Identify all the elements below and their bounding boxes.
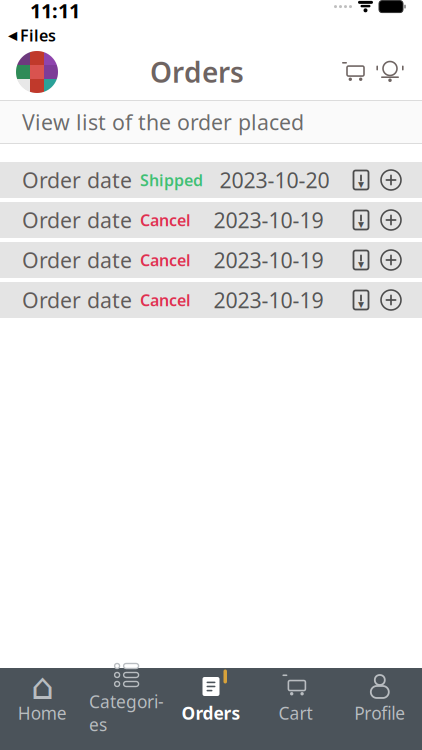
staticText: Order date <box>22 166 132 194</box>
button[interactable]: Categories <box>84 655 169 742</box>
staticText: 2023-10-19 <box>213 286 323 314</box>
staticText: Cancel <box>140 209 191 231</box>
button[interactable]: Order details <box>376 169 406 191</box>
staticText: 11:11 <box>30 0 80 24</box>
button[interactable]: Download invoice <box>346 289 376 311</box>
staticText: Categories <box>89 690 164 736</box>
staticText: Cart <box>278 701 312 724</box>
staticText: Profile <box>354 701 405 724</box>
button[interactable]: Order details <box>376 249 406 271</box>
staticText: ◀ <box>8 28 17 42</box>
staticText: ▾ <box>358 217 364 231</box>
staticText: 2023-10-19 <box>213 206 323 234</box>
button[interactable]: Profile photo <box>0 45 58 99</box>
staticText: 2023-10-20 <box>219 166 329 194</box>
staticText: Cancel <box>140 289 191 311</box>
button[interactable]: Download invoice <box>346 209 376 231</box>
staticText: Orders <box>150 53 244 91</box>
staticText: Files <box>20 25 56 46</box>
button[interactable]: Cart <box>336 53 372 91</box>
staticText: 2023-10-19 <box>213 246 323 274</box>
staticText: Shipped <box>140 169 203 191</box>
button[interactable]: Order details <box>376 289 406 311</box>
staticText: ▾ <box>358 297 364 311</box>
button[interactable]: ⌂ <box>0 666 84 730</box>
staticText: ▾ <box>358 177 364 191</box>
button[interactable]: Profile <box>338 666 422 730</box>
staticText: ⌂ <box>31 666 54 707</box>
button[interactable]: Cart <box>253 666 338 730</box>
button[interactable]: Order details <box>376 209 406 231</box>
staticText: View list of the order placed <box>22 108 304 136</box>
staticText: Home <box>18 701 67 724</box>
button[interactable]: Notifications <box>372 53 408 91</box>
button[interactable]: Download invoice <box>346 169 376 191</box>
button[interactable]: Orders <box>169 666 253 730</box>
staticText: Order date <box>22 206 132 234</box>
staticText: ▾ <box>358 257 364 271</box>
staticText: Cancel <box>140 249 191 271</box>
button[interactable]: Download invoice <box>346 249 376 271</box>
staticText: Orders <box>181 701 240 724</box>
staticText: Order date <box>22 286 132 314</box>
staticText: Order date <box>22 246 132 274</box>
